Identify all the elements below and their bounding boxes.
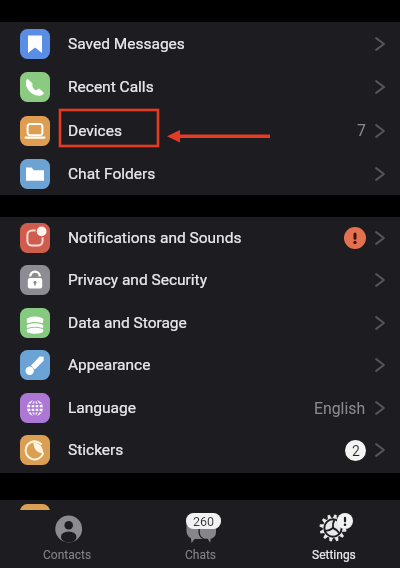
staticText: Notifications and Sounds [68,229,242,247]
staticText: 2 [352,443,360,459]
staticText: Privacy and Security [68,271,208,289]
button[interactable]: Data and Storage [0,302,400,344]
button[interactable]: Contacts [0,510,134,568]
button[interactable]: Devices [0,109,400,152]
staticText: 7 [357,121,366,140]
staticText: Recent Calls [68,78,154,96]
button[interactable]: Language [0,387,400,429]
staticText: Devices [68,122,122,140]
staticText: 260 [193,514,215,529]
button[interactable]: Privacy and Security [0,259,400,301]
staticText: Appearance [68,356,151,374]
button[interactable]: Saved Messages [0,22,400,65]
staticText: Contacts [43,548,92,562]
button[interactable]: Notifications and Sounds [0,217,400,259]
button[interactable]: Stickers [0,429,400,471]
button[interactable]: Appearance [0,344,400,386]
button[interactable]: Chats [134,510,267,568]
staticText: English [314,399,366,418]
staticText: Language [68,399,136,417]
staticText: Stickers [68,441,124,459]
staticText: Data and Storage [68,314,187,332]
staticText: Settings [312,548,356,562]
button[interactable]: Recent Calls [0,65,400,108]
button[interactable]: Settings [267,510,400,568]
staticText: Chat Folders [68,165,156,183]
staticText: Saved Messages [68,35,185,53]
staticText: Chats [185,548,217,562]
button[interactable]: Chat Folders [0,152,400,195]
